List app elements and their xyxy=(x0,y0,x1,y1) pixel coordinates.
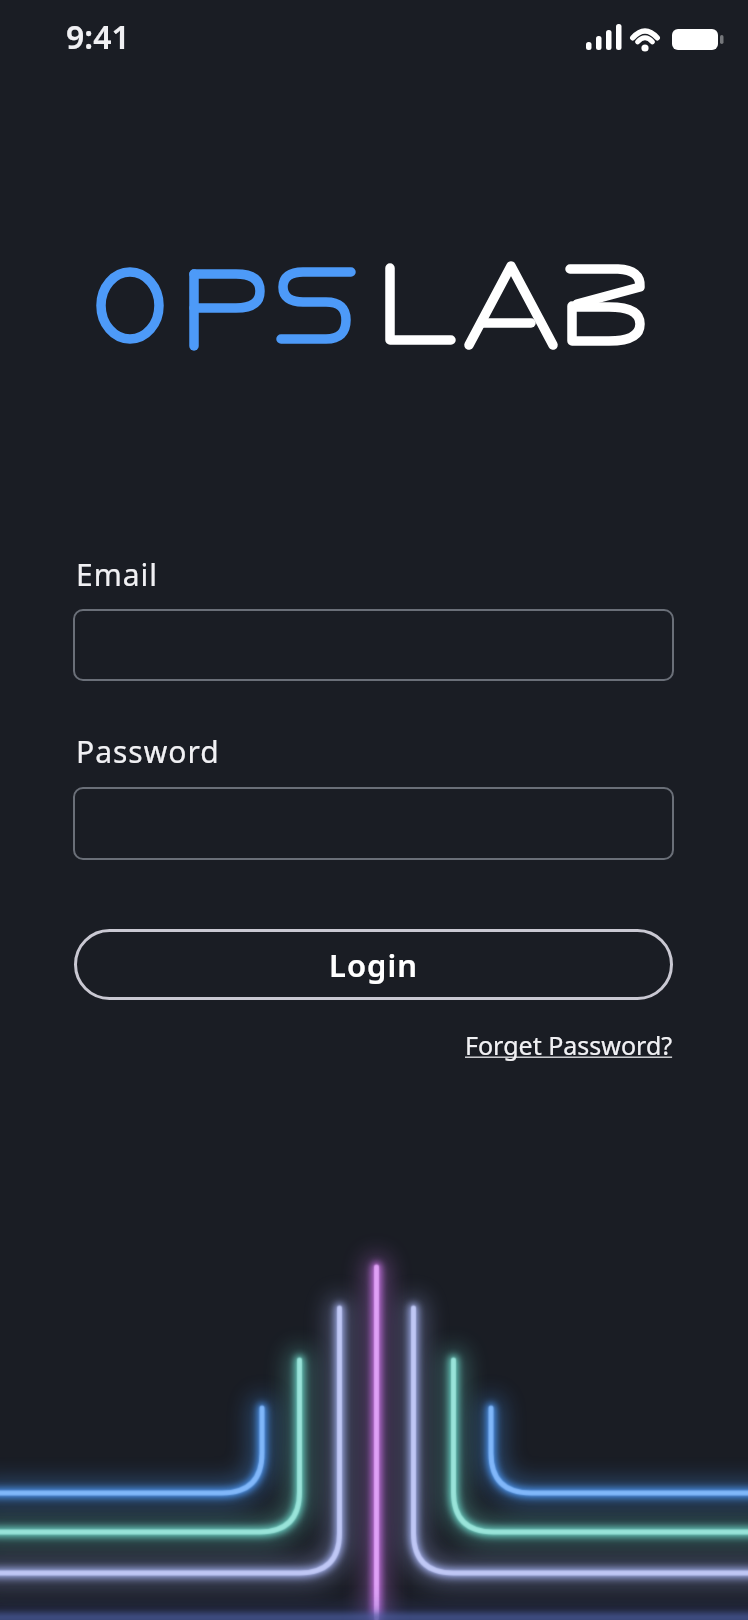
staticText: 9:41 xyxy=(66,15,130,59)
staticText: Password xyxy=(76,731,220,772)
button[interactable] xyxy=(73,609,674,681)
button[interactable] xyxy=(73,787,674,860)
staticText: Login xyxy=(329,944,419,986)
staticText: Email xyxy=(76,554,159,595)
button[interactable]: Login xyxy=(74,929,673,1000)
button[interactable]: Forget Password? xyxy=(465,1028,673,1062)
